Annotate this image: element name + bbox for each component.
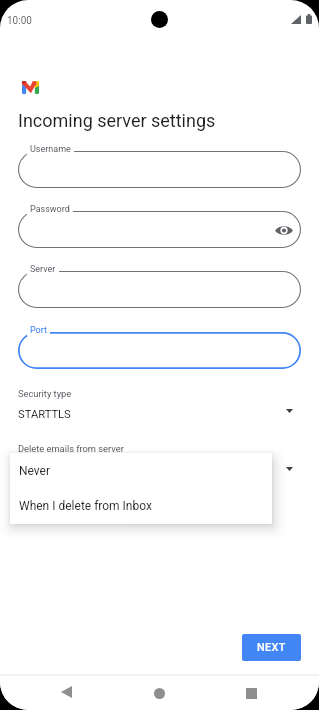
- staticText: When I delete from Inbox: [19, 499, 152, 513]
- button[interactable]: When I delete from Inbox: [10, 488, 272, 524]
- button[interactable]: Home: [139, 675, 179, 710]
- button[interactable]: Never: [10, 453, 272, 488]
- staticText: Incoming server settings: [18, 110, 216, 131]
- staticText: Security type: [18, 388, 72, 399]
- staticText: Never: [19, 464, 51, 478]
- other: Expand Security type: [286, 409, 293, 413]
- button[interactable]: NEXT: [242, 634, 301, 661]
- button[interactable]: Back: [46, 674, 86, 710]
- staticText: NEXT: [257, 641, 286, 654]
- staticText: Never: [18, 463, 47, 476]
- staticText: Delete emails from server: [18, 443, 124, 454]
- staticText: Server: [30, 264, 56, 275]
- staticText: Username: [30, 144, 71, 155]
- button[interactable]: Security type: [0, 388, 319, 424]
- other: Show password: [275, 225, 293, 236]
- staticText: Password: [30, 204, 70, 215]
- staticText: 10:00: [7, 15, 32, 27]
- staticText: Port: [30, 325, 47, 336]
- button[interactable]: Delete emails from server: [0, 443, 319, 479]
- staticText: STARTTLS: [18, 408, 71, 421]
- button[interactable]: Recent apps: [231, 675, 271, 710]
- other: Expand Delete emails from server: [286, 467, 293, 471]
